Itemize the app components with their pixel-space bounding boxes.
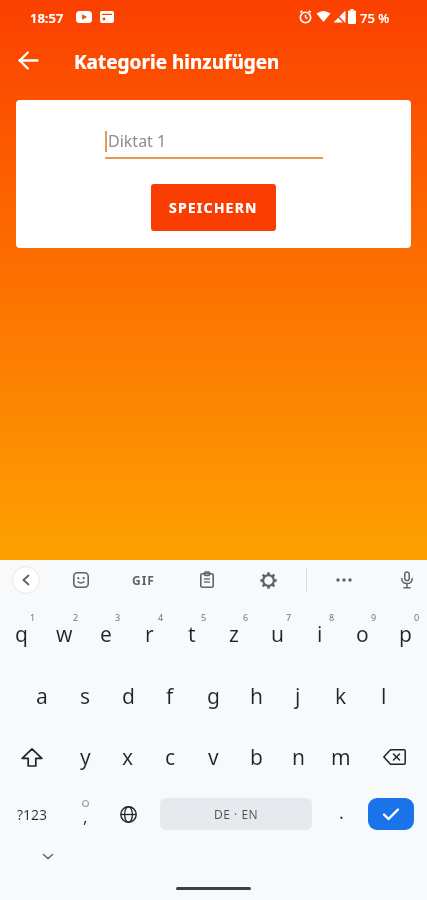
staticText: 6 [243, 611, 249, 623]
staticText: DE · EN [214, 806, 259, 822]
button[interactable]: v [192, 729, 234, 785]
staticText: g [207, 682, 220, 711]
button[interactable]: l [363, 668, 405, 724]
staticText: 1 [30, 611, 36, 623]
staticText: u [271, 620, 284, 649]
staticText: n [292, 743, 305, 772]
staticText: SPEICHERN [169, 198, 258, 217]
button[interactable]: x [107, 729, 149, 785]
button[interactable]: o [341, 606, 383, 662]
button[interactable]: c [149, 729, 191, 785]
staticText: . [339, 800, 344, 825]
staticText: GIF [132, 572, 155, 588]
button[interactable] [4, 729, 60, 785]
button[interactable]: . [320, 784, 362, 840]
button[interactable] [8, 40, 48, 80]
button[interactable]: s [64, 668, 106, 724]
button[interactable]: u [256, 606, 298, 662]
button[interactable]: q [0, 606, 42, 662]
staticText: 2 [73, 611, 79, 623]
button[interactable]: t [171, 606, 213, 662]
button[interactable]: p [384, 606, 426, 662]
staticText: b [250, 743, 263, 772]
button[interactable]: f [149, 668, 191, 724]
staticText: 3 [115, 611, 121, 623]
button[interactable]: d [107, 668, 149, 724]
staticText: z [229, 620, 239, 649]
staticText: 9 [371, 611, 377, 623]
staticText: 7 [286, 611, 292, 623]
staticText: d [122, 682, 135, 711]
staticText: , [83, 805, 88, 828]
staticText: 0 [414, 611, 420, 623]
button[interactable]: ?123 [6, 786, 58, 842]
button[interactable] [393, 566, 421, 594]
staticText: t [188, 620, 196, 649]
staticText: f [166, 682, 174, 711]
staticText: Diktat 1 [108, 130, 167, 152]
staticText: j [295, 682, 301, 711]
button[interactable]: n [277, 729, 319, 785]
staticText: 4 [158, 611, 164, 623]
button[interactable]: b [235, 729, 277, 785]
staticText: a [36, 682, 48, 711]
button[interactable] [366, 729, 422, 785]
staticText: r [145, 620, 154, 649]
staticText: k [335, 682, 347, 711]
staticText: p [399, 620, 412, 649]
staticText: q [15, 620, 28, 649]
button[interactable]: i [299, 606, 341, 662]
button[interactable]: SPEICHERN [151, 184, 276, 231]
staticText: l [381, 682, 387, 711]
button[interactable] [193, 566, 221, 594]
button[interactable] [368, 798, 414, 830]
button[interactable]: , [64, 788, 106, 844]
button[interactable]: m [320, 729, 362, 785]
staticText: 8 [329, 611, 335, 623]
staticText: s [80, 682, 91, 711]
button[interactable] [254, 566, 282, 594]
button[interactable]: w [43, 606, 85, 662]
button[interactable]: a [21, 668, 63, 724]
staticText: o [356, 620, 369, 649]
staticText: c [165, 743, 176, 772]
button[interactable]: j [277, 668, 319, 724]
staticText: m [331, 743, 351, 772]
staticText: 75 % [360, 9, 390, 27]
staticText: h [250, 682, 263, 711]
staticText: Kategorie hinzufügen [74, 49, 280, 75]
staticText: y [80, 743, 91, 772]
staticText: 18:57 [30, 9, 64, 27]
button[interactable]: y [64, 729, 106, 785]
staticText: 5 [201, 611, 207, 623]
button[interactable] [107, 786, 149, 842]
button[interactable]: z [213, 606, 255, 662]
button[interactable]: r [128, 606, 170, 662]
staticText: w [56, 620, 73, 649]
button[interactable]: e [85, 606, 127, 662]
button[interactable]: h [235, 668, 277, 724]
button[interactable] [67, 566, 95, 594]
button[interactable] [34, 846, 62, 866]
button[interactable]: g [192, 668, 234, 724]
staticText: v [208, 743, 219, 772]
button[interactable]: GIF [127, 566, 159, 594]
button[interactable] [330, 566, 358, 594]
button[interactable] [12, 566, 40, 594]
staticText: i [317, 620, 323, 649]
button[interactable]: k [320, 668, 362, 724]
staticText: ?123 [17, 805, 48, 824]
staticText: x [122, 743, 134, 772]
staticText: e [100, 620, 112, 649]
button[interactable]: DE · EN [160, 798, 312, 830]
